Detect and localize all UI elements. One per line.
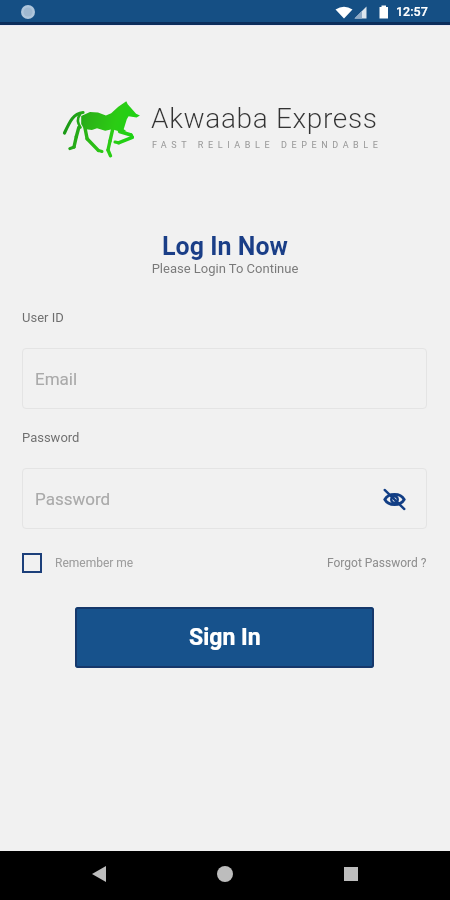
button[interactable]: Remember me (22, 553, 134, 573)
button[interactable]: Password (22, 468, 427, 529)
button[interactable]: Forgot Password ? (327, 556, 427, 570)
staticText: Log In Now (0, 232, 450, 261)
staticText: User ID (22, 310, 64, 325)
staticText: Akwaaba Express (151, 102, 378, 135)
button[interactable]: Sign In (75, 607, 374, 668)
staticText: Please Login To Continue (0, 261, 450, 276)
staticText: Remember me (55, 556, 134, 570)
staticText: Sign In (189, 624, 261, 651)
staticText: 12:57 (396, 4, 428, 19)
staticText: FAST RELIABLE DEPENDABLE (152, 140, 383, 151)
staticText: Password (22, 430, 80, 445)
button[interactable]: Email (22, 348, 427, 409)
button[interactable]: Toggle password visibility (379, 484, 409, 514)
staticText: Password (35, 489, 111, 509)
staticText: Email (35, 369, 78, 389)
